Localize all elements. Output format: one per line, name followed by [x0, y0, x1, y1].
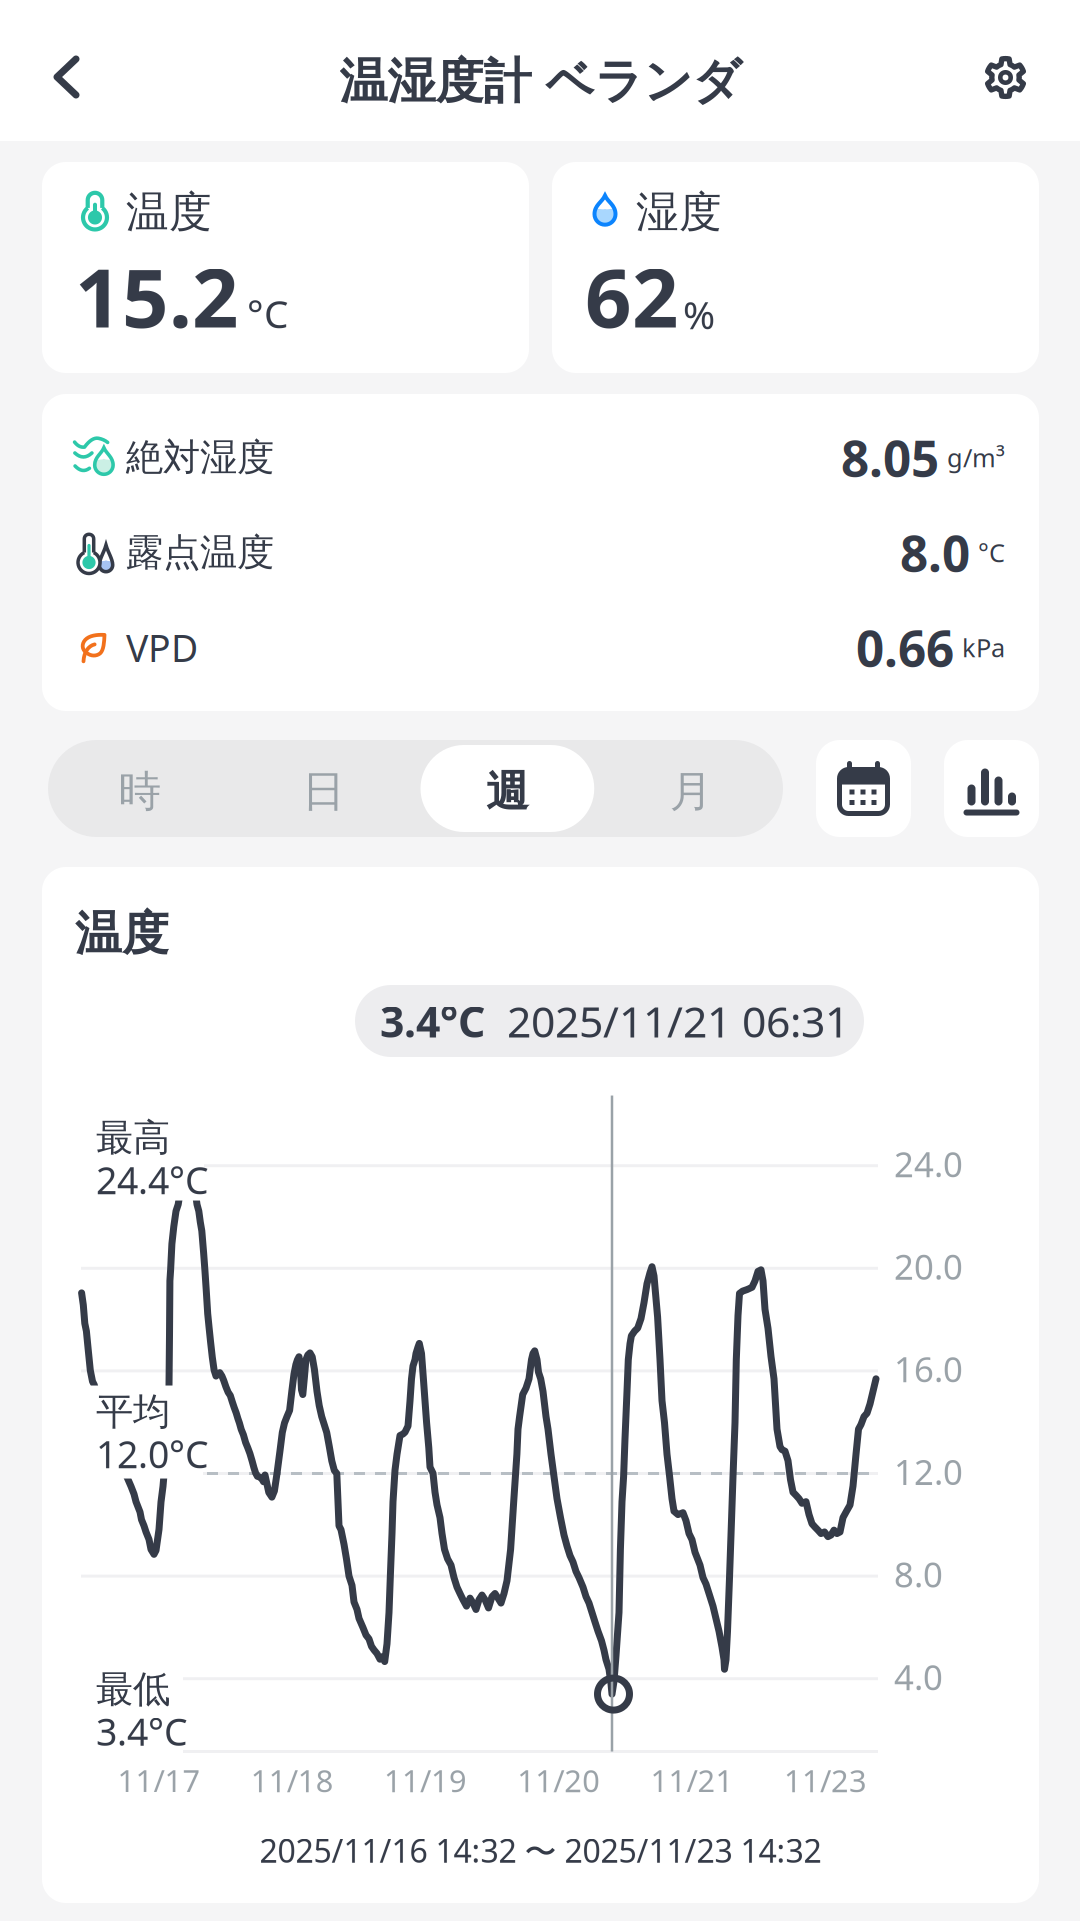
staticText: 12.0	[894, 1448, 963, 1494]
staticText: 11/21	[651, 1760, 734, 1801]
staticText: °C	[247, 288, 288, 339]
staticText: 絶対湿度	[126, 435, 274, 480]
button[interactable]: Calendar	[816, 740, 911, 837]
staticText: 62	[585, 242, 679, 350]
staticText: 15.2	[75, 242, 239, 350]
staticText: 11/20	[517, 1760, 600, 1801]
staticText: 11/18	[251, 1760, 334, 1801]
staticText: 湿度	[636, 186, 722, 238]
staticText: kPa	[962, 631, 1005, 664]
staticText: 露点温度	[126, 530, 274, 575]
staticText: VPD	[126, 623, 198, 672]
staticText: 平均	[96, 1389, 170, 1435]
staticText: 8.05	[841, 425, 939, 490]
staticText: g/m³	[947, 441, 1005, 474]
staticText: 0.66	[856, 615, 954, 680]
button[interactable]: Statistics	[944, 740, 1039, 837]
staticText: 11/17	[117, 1760, 200, 1801]
staticText: 週	[486, 765, 529, 818]
staticText: 最高	[96, 1115, 170, 1161]
staticText: 24.0	[894, 1141, 963, 1187]
staticText: 12.0°C	[96, 1429, 209, 1479]
staticText: 温湿度計 ベランダ	[339, 52, 741, 111]
button[interactable]: 時	[48, 740, 232, 837]
staticText: 温度	[126, 186, 212, 238]
button[interactable]: 日	[232, 740, 416, 837]
staticText: 8.0	[900, 520, 970, 585]
staticText: 2025/11/21 06:31	[507, 993, 849, 1049]
staticText: 11/19	[384, 1760, 467, 1801]
button[interactable]: 月	[599, 740, 783, 837]
button[interactable]: Settings	[956, 29, 1055, 126]
staticText: 時	[118, 765, 161, 818]
staticText: 3.4°C	[96, 1706, 188, 1756]
staticText: 11/23	[784, 1760, 867, 1801]
staticText: 日	[302, 765, 345, 818]
staticText: 2025/11/16 14:32 〜 2025/11/23 14:32	[259, 1829, 821, 1872]
staticText: 4.0	[894, 1654, 943, 1700]
staticText: 16.0	[894, 1346, 963, 1392]
button[interactable]: 週	[415, 740, 599, 837]
staticText: 8.0	[894, 1551, 943, 1597]
staticText: °C	[978, 536, 1005, 569]
button[interactable]: Back	[27, 29, 106, 125]
staticText: 20.0	[894, 1243, 963, 1289]
staticText: 24.4°C	[96, 1155, 209, 1205]
staticText: 温度	[75, 905, 169, 962]
staticText: 最低	[96, 1666, 170, 1712]
staticText: 3.4°C	[380, 993, 485, 1049]
staticText: %	[683, 289, 715, 340]
staticText: 月	[670, 765, 713, 818]
